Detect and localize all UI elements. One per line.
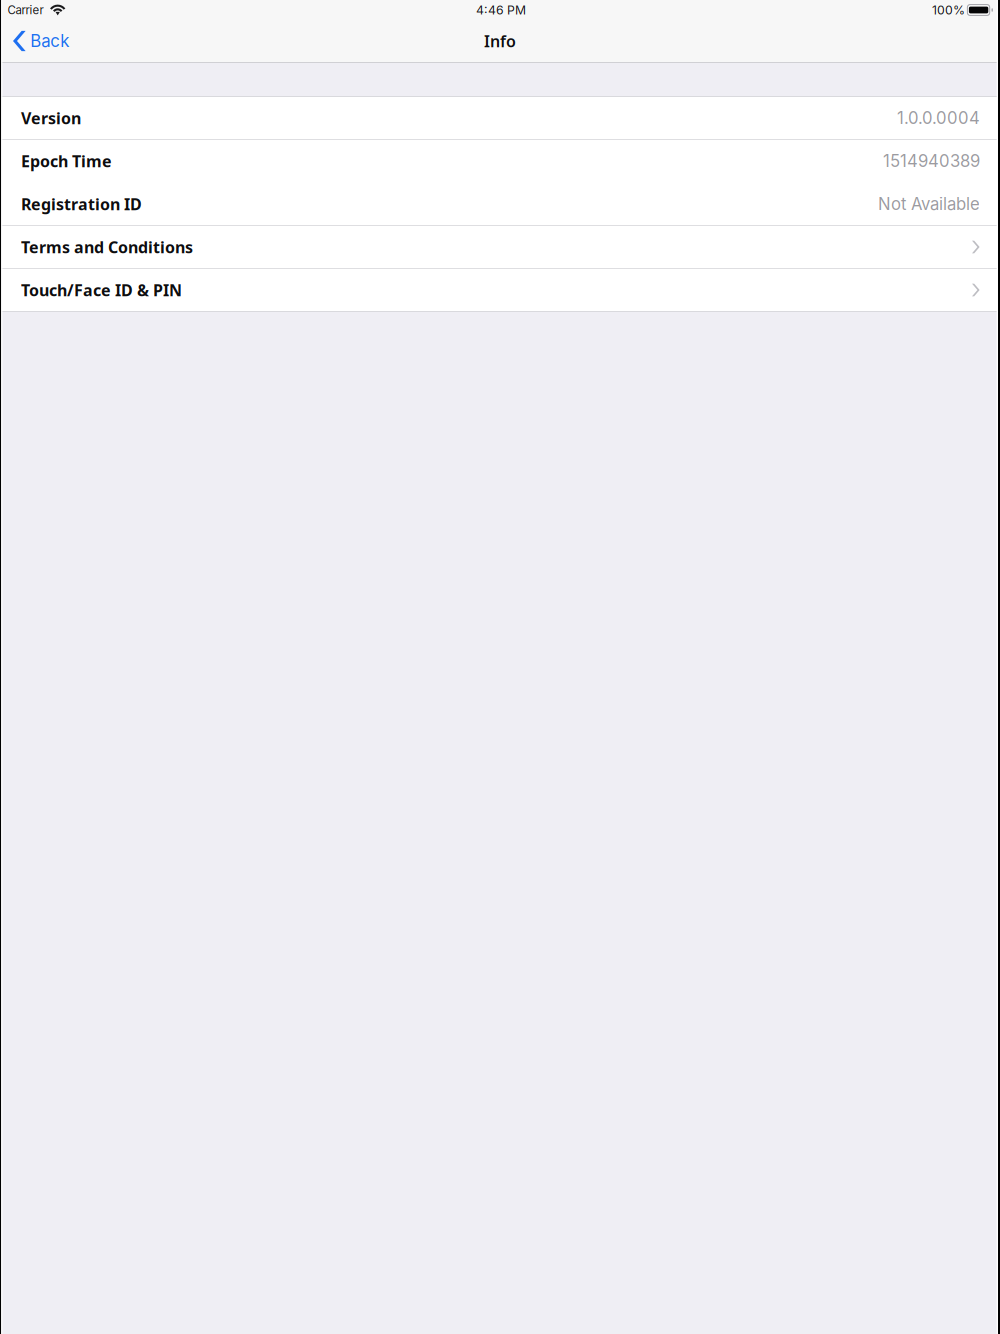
button[interactable]: Touch/Face ID & PIN: [0, 269, 1000, 311]
staticText: Version: [21, 107, 81, 129]
staticText: Not Available: [878, 194, 980, 214]
staticText: Terms and Conditions: [21, 236, 193, 258]
staticText: Info: [484, 30, 516, 52]
staticText: Touch/Face ID & PIN: [21, 279, 182, 301]
staticText: Registration ID: [21, 193, 142, 215]
button[interactable]: Terms and Conditions: [0, 226, 1000, 268]
staticText: Back: [30, 31, 69, 51]
button[interactable]: Back: [0, 20, 79, 62]
staticText: Carrier: [8, 3, 44, 17]
staticText: 1.0.0.0004: [897, 108, 980, 128]
staticText: 4:46 PM: [476, 3, 526, 17]
staticText: 1514940389: [883, 151, 980, 171]
staticText: 100%: [932, 3, 965, 17]
staticText: Epoch Time: [21, 150, 112, 172]
